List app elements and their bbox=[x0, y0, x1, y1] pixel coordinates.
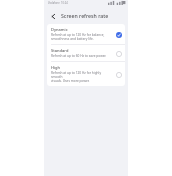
staticText: Screen refresh rate bbox=[61, 12, 109, 19]
staticText: Dynamic bbox=[51, 27, 68, 32]
staticText: Refresh at up to 120 Hz for highly smoot… bbox=[51, 71, 113, 83]
staticText: High bbox=[51, 65, 61, 70]
button[interactable]: Dynamic bbox=[47, 24, 125, 44]
button[interactable]: High bbox=[47, 62, 125, 86]
staticText: Vodafone 10:24 bbox=[48, 1, 68, 5]
staticText: Refresh at up to 120 Hz for balance, smo… bbox=[51, 33, 105, 41]
button[interactable]: Back bbox=[48, 11, 58, 21]
button[interactable]: Standard bbox=[47, 45, 125, 61]
staticText: Refresh at up to 60 Hz to save power. bbox=[51, 54, 107, 58]
staticText: Standard bbox=[51, 48, 69, 53]
